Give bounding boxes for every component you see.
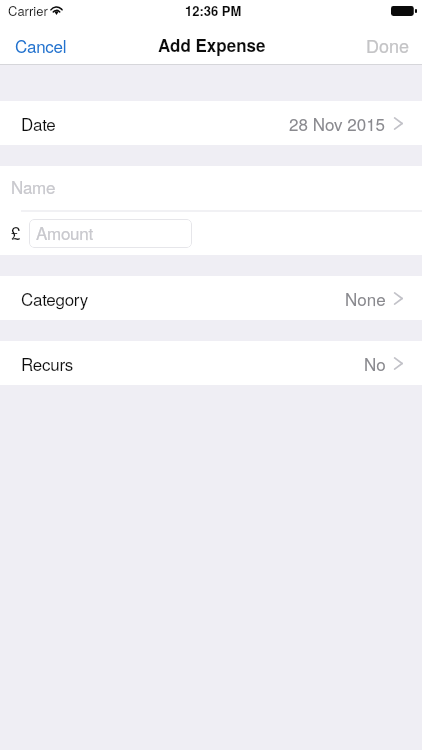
button[interactable]: Recurs xyxy=(0,341,422,385)
staticText: Recurs xyxy=(21,351,74,375)
staticText: Cancel xyxy=(15,33,67,57)
staticText: Add Expense xyxy=(158,33,266,57)
other: Wi-Fi signal xyxy=(50,5,63,15)
button[interactable]: Done xyxy=(354,25,422,64)
staticText: 28 Nov 2015 xyxy=(289,111,386,135)
button[interactable]: Category xyxy=(0,276,422,320)
button[interactable]: Amount xyxy=(29,219,192,248)
staticText: Amount xyxy=(36,220,93,244)
staticText: Date xyxy=(21,111,56,135)
button[interactable]: Cancel xyxy=(0,25,82,64)
staticText: Name xyxy=(11,174,56,198)
staticText: £ xyxy=(11,220,21,244)
staticText: No xyxy=(364,351,386,375)
staticText: Carrier xyxy=(8,1,48,20)
other: Battery full xyxy=(391,6,417,16)
button[interactable]: Date xyxy=(0,101,422,145)
button[interactable]: Name xyxy=(0,166,422,210)
staticText: None xyxy=(345,286,386,310)
staticText: Done xyxy=(366,32,410,58)
staticText: 12:36 PM xyxy=(185,1,242,20)
staticText: Category xyxy=(21,286,88,310)
